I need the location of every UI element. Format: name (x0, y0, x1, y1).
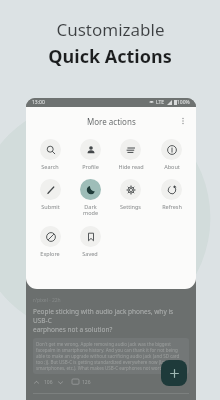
staticText: Settings (120, 203, 141, 210)
button[interactable]: Saved (70, 226, 110, 257)
staticText: Profile (82, 163, 99, 170)
staticText: About (164, 163, 180, 170)
button[interactable]: Compose (161, 360, 187, 386)
staticText: 13:00 (32, 99, 45, 106)
button[interactable]: Refresh (151, 179, 192, 210)
button[interactable]: Explore (30, 226, 70, 257)
staticText: Customizable (56, 18, 165, 41)
button[interactable]: Settings (110, 179, 151, 210)
staticText: Submit (41, 203, 60, 210)
button[interactable]: Dark mode (70, 179, 110, 217)
staticText: Saved (82, 250, 98, 257)
staticText: LTE (156, 99, 165, 106)
staticText: Refresh (162, 203, 182, 210)
staticText: More actions (87, 116, 136, 127)
staticText: Don't get me wrong, Apple removing audio… (36, 341, 186, 371)
button[interactable]: Submit (30, 179, 70, 210)
staticText: 126 (82, 379, 91, 386)
staticText: People sticking with audio jack phones, … (33, 307, 189, 334)
button[interactable]: Search (30, 139, 70, 170)
staticText: Search (41, 163, 59, 170)
button[interactable]: About (151, 139, 192, 170)
staticText: Quick Actions (48, 44, 172, 69)
staticText: 106 (44, 379, 53, 386)
staticText: Explore (40, 250, 60, 257)
staticText: 100% (177, 99, 190, 106)
button[interactable]: Hide read (110, 139, 151, 170)
staticText: Dark mode (83, 203, 98, 217)
staticText: r/pixel · 22h (33, 297, 61, 304)
button[interactable]: Profile (70, 139, 110, 170)
staticText: Hide read (118, 163, 144, 170)
button[interactable]: More options (176, 114, 190, 128)
